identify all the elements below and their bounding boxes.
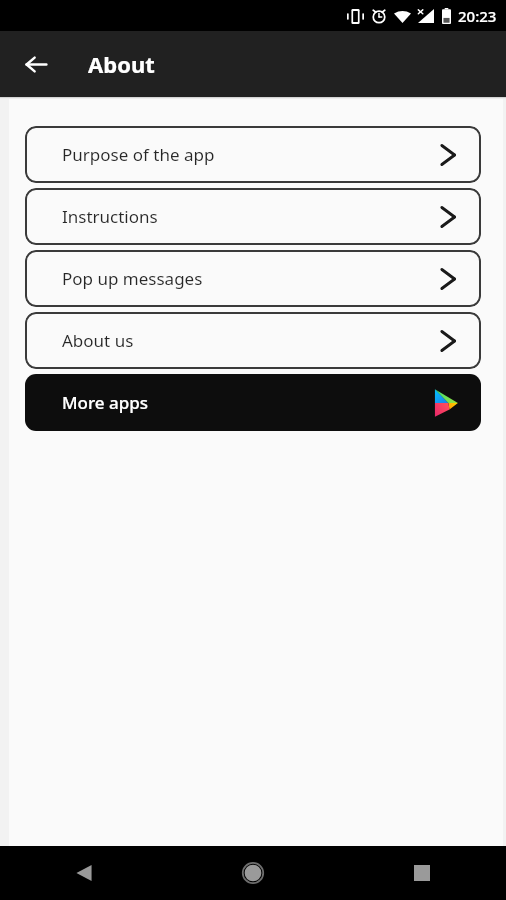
staticText: Purpose of the app <box>62 143 437 166</box>
staticText: Instructions <box>62 205 437 228</box>
button[interactable]: Purpose of the app <box>25 126 481 183</box>
button[interactable]: About us <box>25 312 481 369</box>
button[interactable]: Back <box>0 846 168 900</box>
button[interactable]: Recents <box>337 846 506 900</box>
staticText: 20:23 <box>458 6 497 26</box>
staticText: Pop up messages <box>62 267 437 290</box>
button[interactable]: Home <box>168 846 337 900</box>
button[interactable]: Back <box>14 42 58 86</box>
staticText: About <box>88 49 155 79</box>
button[interactable]: Instructions <box>25 188 481 245</box>
button[interactable]: More apps <box>25 374 481 431</box>
staticText: About us <box>62 329 437 352</box>
staticText: More apps <box>62 391 431 414</box>
button[interactable]: Pop up messages <box>25 250 481 307</box>
